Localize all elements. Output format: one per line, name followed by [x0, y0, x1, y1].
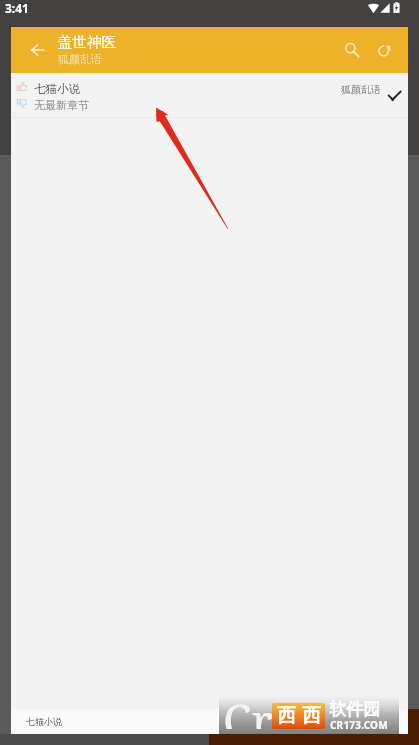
button[interactable]: Refresh: [368, 33, 402, 67]
staticText: 盖世神医: [58, 33, 116, 51]
staticText: Cr: [223, 689, 273, 729]
staticText: 七猫小说: [26, 716, 62, 727]
staticText: 七猫小说: [34, 82, 80, 96]
button[interactable]: 七猫小说: [11, 709, 408, 734]
staticText: CR173.COM: [330, 718, 388, 732]
staticText: 西: [302, 704, 321, 728]
staticText: 狐颜乱语: [58, 52, 102, 66]
staticText: 软件园: [329, 699, 380, 720]
staticText: 狐颜乱语: [341, 83, 381, 96]
staticText: 3:41: [5, 0, 29, 16]
button[interactable]: 七猫小说: [11, 73, 408, 118]
button[interactable]: Search: [335, 33, 369, 67]
button[interactable]: Back: [20, 33, 54, 67]
staticText: 西: [277, 704, 296, 728]
staticText: 无最新章节: [34, 98, 89, 112]
